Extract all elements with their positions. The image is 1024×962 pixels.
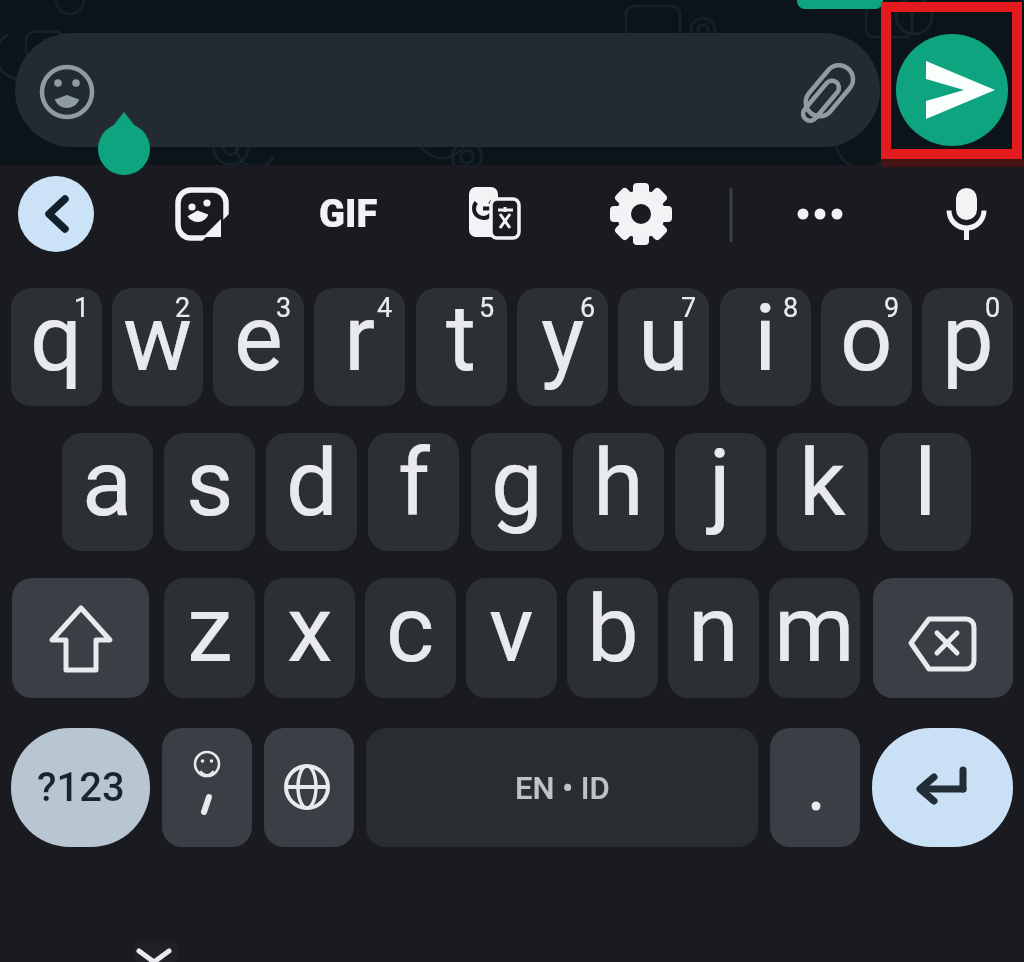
button[interactable] — [873, 578, 1013, 698]
staticText: i — [754, 288, 777, 393]
button[interactable]: GIF — [300, 186, 396, 242]
button[interactable] — [162, 728, 252, 847]
staticText: ?123 — [37, 764, 125, 811]
staticText: y — [541, 288, 585, 393]
button[interactable]: c — [365, 578, 456, 698]
button[interactable]: a — [62, 433, 153, 551]
button[interactable] — [896, 34, 1008, 146]
staticText: 0 — [985, 292, 1001, 324]
staticText: p — [942, 288, 994, 393]
staticText: j — [709, 433, 732, 538]
staticText: d — [286, 433, 338, 538]
staticText: s — [186, 433, 234, 538]
staticText: r — [344, 288, 376, 393]
button[interactable]: s — [164, 433, 255, 551]
button[interactable]: f — [368, 433, 459, 551]
staticText: u — [638, 288, 689, 393]
staticText: f — [398, 433, 430, 538]
button[interactable]: b — [567, 578, 658, 698]
staticText: w — [123, 288, 193, 393]
button[interactable]: q — [11, 288, 102, 406]
button[interactable]: EN • ID — [366, 728, 758, 847]
staticText: 6 — [580, 292, 596, 324]
staticText: g — [491, 433, 543, 538]
button[interactable]: j — [675, 433, 766, 551]
staticText: q — [30, 288, 83, 393]
button[interactable]: h — [573, 433, 664, 551]
button[interactable]: g — [471, 433, 562, 551]
staticText: 8 — [783, 292, 799, 324]
staticText: v — [489, 578, 534, 684]
staticText: GIF — [319, 192, 378, 237]
button[interactable] — [790, 186, 850, 242]
staticText: 3 — [276, 292, 292, 324]
button[interactable]: r — [314, 288, 405, 406]
button[interactable]: d — [266, 433, 357, 551]
button[interactable]: x — [264, 578, 355, 698]
button[interactable]: p — [922, 288, 1013, 406]
button[interactable] — [133, 941, 179, 962]
button[interactable] — [464, 184, 524, 244]
staticText: l — [914, 433, 937, 538]
staticText: 1 — [74, 292, 90, 324]
button[interactable]: m — [769, 578, 860, 698]
staticText: m — [774, 578, 855, 684]
button[interactable]: v — [466, 578, 557, 698]
staticText: 2 — [175, 292, 191, 324]
button[interactable]: e — [213, 288, 304, 406]
staticText: 5 — [479, 292, 495, 324]
staticText: e — [234, 288, 283, 393]
button[interactable]: y — [517, 288, 608, 406]
button[interactable] — [936, 182, 996, 244]
staticText: t — [446, 288, 477, 393]
staticText: o — [840, 288, 893, 393]
button[interactable]: n — [668, 578, 759, 698]
button[interactable]: u — [618, 288, 709, 406]
button[interactable]: z — [164, 578, 255, 698]
staticText: a — [82, 433, 133, 538]
staticText: b — [587, 578, 639, 684]
button[interactable] — [610, 184, 672, 244]
button[interactable] — [18, 176, 94, 252]
button[interactable] — [770, 728, 860, 847]
staticText: 4 — [377, 292, 393, 324]
staticText: 7 — [681, 292, 697, 324]
staticText: x — [287, 578, 333, 684]
button[interactable]: o — [821, 288, 912, 406]
button[interactable]: ?123 — [11, 728, 150, 847]
staticText: c — [386, 578, 435, 684]
button[interactable] — [172, 186, 232, 244]
button[interactable] — [264, 728, 354, 847]
button[interactable] — [12, 578, 149, 698]
button[interactable] — [872, 728, 1013, 847]
staticText: z — [187, 578, 233, 684]
button[interactable] — [15, 33, 880, 147]
button[interactable]: w — [112, 288, 203, 406]
button[interactable]: k — [777, 433, 868, 551]
staticText: n — [688, 578, 739, 684]
staticText: EN • ID — [515, 770, 610, 806]
button[interactable]: l — [880, 433, 971, 551]
button[interactable]: t — [416, 288, 507, 406]
staticText: 9 — [884, 292, 900, 324]
button[interactable]: i — [720, 288, 811, 406]
staticText: h — [593, 433, 644, 538]
staticText: k — [799, 433, 846, 538]
